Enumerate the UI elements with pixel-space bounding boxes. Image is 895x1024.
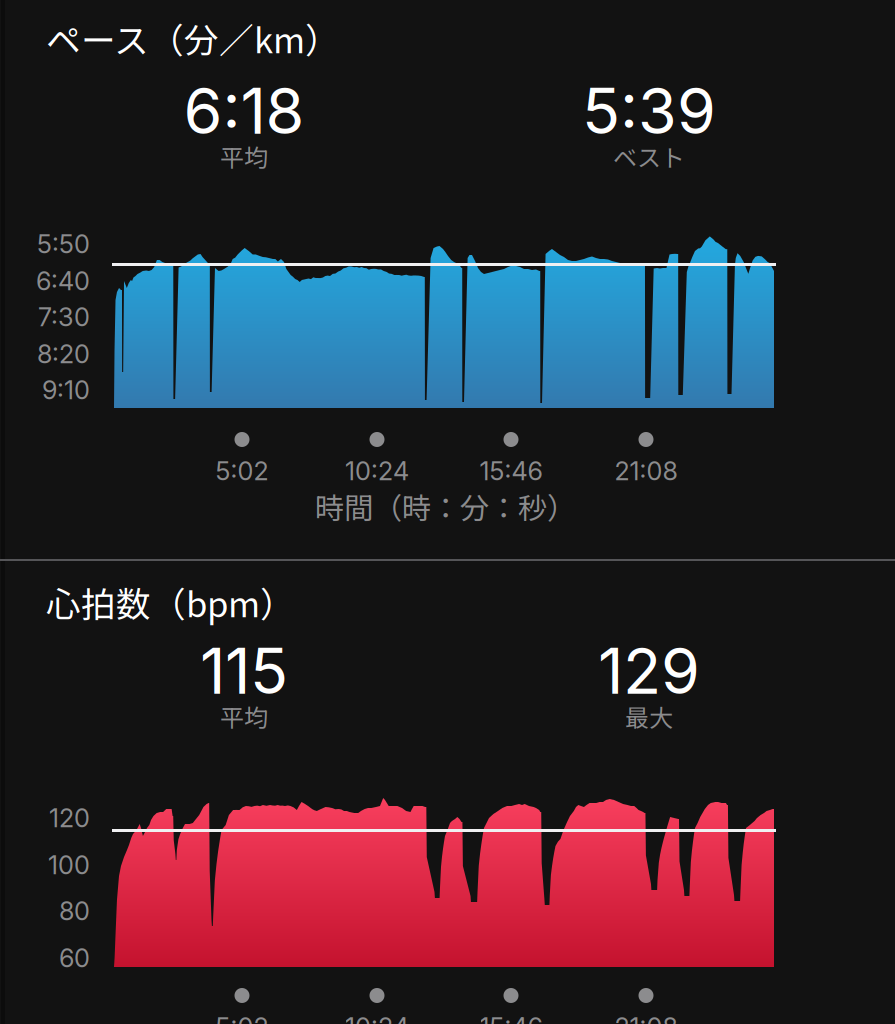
staticText: 平均: [220, 699, 268, 734]
staticText: 115: [200, 633, 288, 709]
button[interactable]: ベスト 5:39: [0, 0, 895, 110]
button[interactable]: 平均 115: [0, 0, 895, 110]
staticText: 心拍数（bpm）: [46, 577, 295, 627]
staticText: ペース（分／km）: [46, 13, 340, 63]
staticText: 8:20: [37, 339, 90, 369]
staticText: ベスト: [613, 139, 685, 174]
staticText: 100: [48, 850, 90, 880]
staticText: 5:39: [582, 73, 716, 149]
staticText: 10:24: [345, 1012, 409, 1024]
staticText: 15:46: [479, 456, 542, 486]
staticText: 6:40: [36, 266, 90, 296]
staticText: 時間（時：分：秒）: [315, 485, 576, 527]
staticText: 21:08: [614, 1012, 677, 1024]
button[interactable]: 平均 6:18: [0, 0, 895, 110]
staticText: 5:50: [37, 229, 90, 259]
staticText: 5:02: [215, 456, 268, 486]
staticText: 最大: [625, 699, 673, 734]
staticText: 120: [49, 803, 90, 833]
staticText: 60: [59, 943, 90, 973]
staticText: 平均: [220, 139, 268, 174]
button[interactable]: 最大 129: [0, 0, 895, 110]
staticText: 9:10: [42, 375, 90, 405]
staticText: 7:30: [38, 302, 90, 332]
staticText: 80: [59, 896, 90, 926]
staticText: 10:24: [345, 456, 409, 486]
staticText: 5:02: [215, 1012, 268, 1024]
staticText: 129: [598, 633, 700, 709]
staticText: 21:08: [614, 456, 677, 486]
staticText: 6:18: [183, 73, 304, 149]
staticText: 15:46: [479, 1012, 542, 1024]
